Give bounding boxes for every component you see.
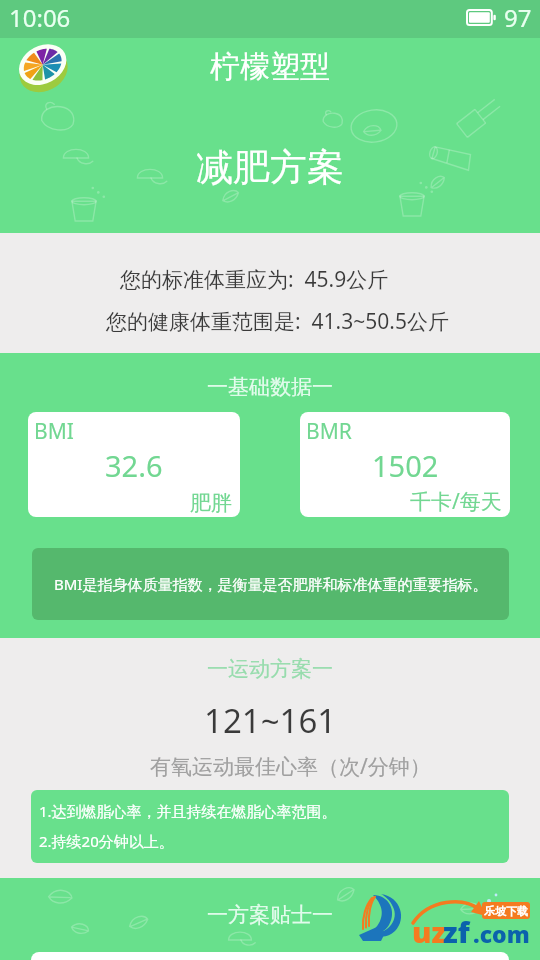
button[interactable]: 柠檬塑型 logo xyxy=(13,40,69,96)
staticText: 2.持续20分钟以上。 xyxy=(39,831,174,851)
staticText: 柠檬塑型 xyxy=(210,48,330,86)
staticText: 10:06 xyxy=(9,1,71,34)
staticText: BMI xyxy=(34,417,74,446)
staticText: 一基础数据一 xyxy=(207,374,333,400)
button[interactable]: 1.达到燃脂心率，并且持续在燃脂心率范围。 xyxy=(31,790,509,863)
staticText: 一运动方案一 xyxy=(207,656,333,682)
button[interactable]: BMI是指身体质量指数，是衡量是否肥胖和标准体重的重要指标。 xyxy=(32,548,509,620)
staticText: 肥胖 xyxy=(190,490,232,516)
other: Battery xyxy=(466,9,496,26)
staticText: 您的健康体重范围是: 41.3~50.5公斤 xyxy=(106,307,449,336)
staticText: 97 xyxy=(504,1,532,34)
staticText: BMI是指身体质量指数，是衡量是否肥胖和标准体重的重要指标。 xyxy=(54,574,488,594)
button[interactable]: BMI xyxy=(28,412,240,517)
staticText: 千卡/每天 xyxy=(410,487,502,516)
staticText: 有氧运动最佳心率（次/分钟） xyxy=(150,752,431,781)
staticText: 121~161 xyxy=(204,698,337,743)
button[interactable]: BMR xyxy=(300,412,510,517)
staticText: 32.6 xyxy=(105,446,163,485)
staticText: 一方案贴士一 xyxy=(207,902,333,928)
staticText: 1.达到燃脂心率，并且持续在燃脂心率范围。 xyxy=(39,801,337,821)
staticText: 减肥方案 xyxy=(196,144,344,191)
staticText: zf xyxy=(443,912,470,951)
staticText: uz xyxy=(412,912,447,951)
staticText: 您的标准体重应为: 45.9公斤 xyxy=(120,265,389,294)
staticText: .com xyxy=(473,918,530,949)
staticText: 1502 xyxy=(372,446,439,485)
staticText: 乐坡下载 xyxy=(484,904,528,918)
staticText: BMR xyxy=(306,417,352,446)
